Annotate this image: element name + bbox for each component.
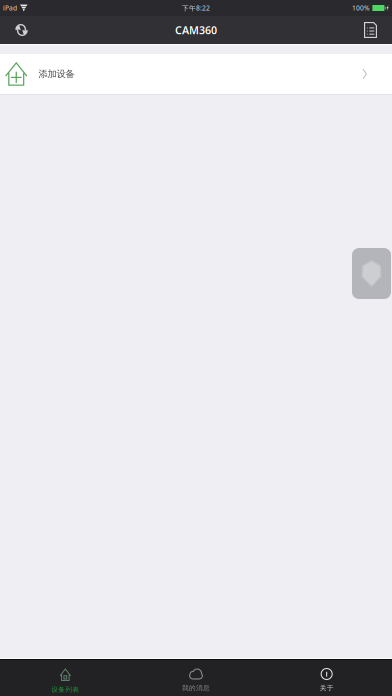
staticText: 添加设备 bbox=[38, 68, 74, 80]
button[interactable]: Refresh bbox=[7, 16, 36, 44]
staticText: CAM360 bbox=[175, 23, 217, 37]
staticText: 100% bbox=[352, 4, 370, 12]
button[interactable]: 我的消息 bbox=[131, 660, 261, 696]
button[interactable]: 关于 bbox=[261, 660, 392, 696]
button[interactable]: 添加设备 bbox=[0, 54, 392, 94]
button[interactable]: 设备列表 bbox=[0, 660, 131, 696]
staticText: 关于 bbox=[320, 684, 334, 692]
staticText: 我的消息 bbox=[182, 684, 210, 692]
staticText: 下午8:22 bbox=[182, 4, 210, 12]
button[interactable]: Event log bbox=[356, 16, 385, 44]
staticText: 设备列表 bbox=[51, 685, 79, 694]
staticText: iPad bbox=[3, 4, 17, 12]
button[interactable]: Camera shortcut bbox=[352, 248, 391, 299]
